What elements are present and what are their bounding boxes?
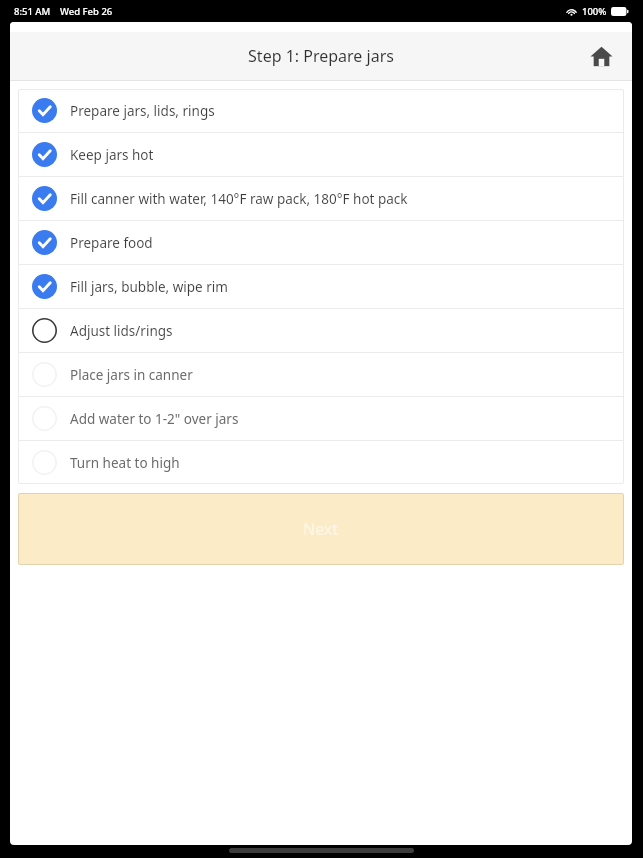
staticText: Add water to 1-2" over jars	[70, 410, 239, 428]
button[interactable]: Home	[582, 37, 620, 75]
staticText: Adjust lids/rings	[70, 322, 173, 340]
staticText: Fill canner with water, 140°F raw pack, …	[70, 190, 408, 208]
button[interactable]: Adjust lids/rings	[18, 309, 624, 352]
staticText: Step 1: Prepare jars	[248, 45, 394, 67]
button[interactable]: Add water to 1-2" over jars	[18, 397, 624, 440]
button[interactable]: Prepare food	[18, 221, 624, 264]
staticText: Place jars in canner	[70, 366, 193, 384]
button[interactable]: Turn heat to high	[18, 441, 624, 484]
staticText: Turn heat to high	[70, 454, 180, 472]
staticText: Wed Feb 26	[60, 5, 113, 18]
button[interactable]: Fill jars, bubble, wipe rim	[18, 265, 624, 308]
staticText: Keep jars hot	[70, 146, 154, 164]
staticText: Next	[303, 518, 339, 540]
button[interactable]: Next	[18, 493, 624, 565]
staticText: Fill jars, bubble, wipe rim	[70, 278, 228, 296]
button[interactable]: Keep jars hot	[18, 133, 624, 176]
staticText: Prepare food	[70, 234, 153, 252]
button[interactable]: Fill canner with water, 140°F raw pack, …	[18, 177, 624, 220]
button[interactable]: Prepare jars, lids, rings	[18, 89, 624, 132]
staticText: Prepare jars, lids, rings	[70, 102, 215, 120]
staticText: 100%	[582, 5, 607, 18]
button[interactable]: Place jars in canner	[18, 353, 624, 396]
staticText: 8:51 AM	[14, 5, 51, 18]
